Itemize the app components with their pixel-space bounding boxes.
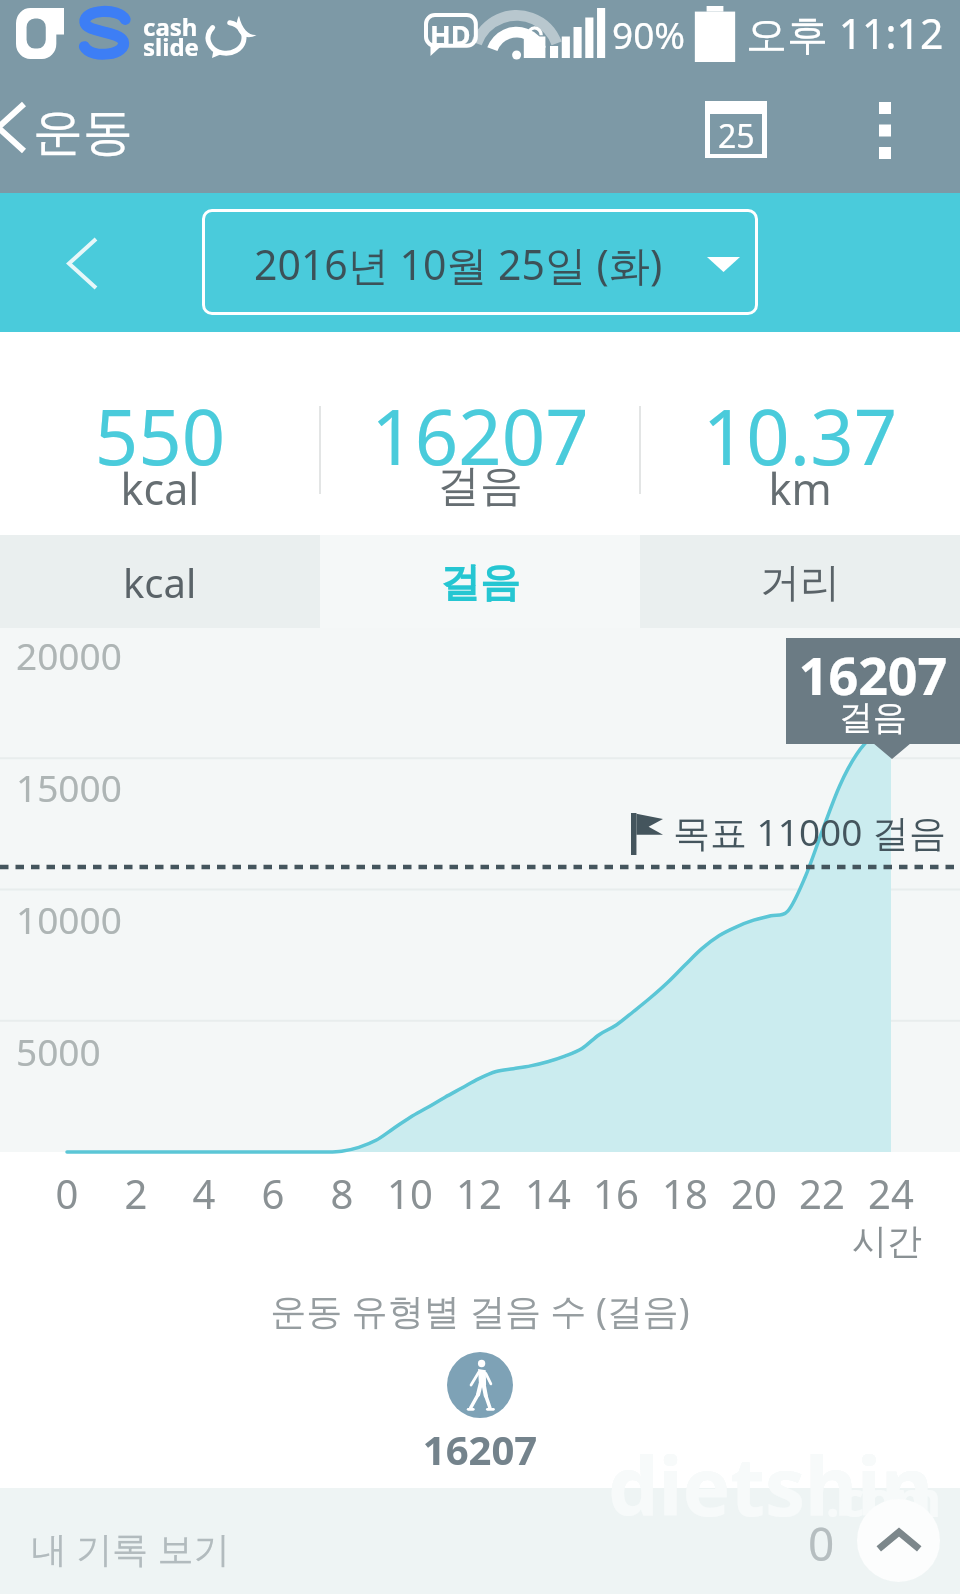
staticText: 22 [782,1166,862,1220]
staticText: 6 [233,1166,313,1220]
staticText: 90% [612,9,686,59]
button[interactable]: kcal [0,535,320,628]
staticText: 5000 [16,1026,101,1076]
button[interactable]: 2016년 10월 25일 (화) [202,209,758,315]
staticText: 16 [576,1166,656,1220]
staticText: dietshin [608,1430,934,1539]
staticText: 0 [808,1512,835,1575]
staticText: 0 [27,1166,107,1220]
staticText: 2016년 10월 25일 (화) [254,236,663,292]
button[interactable]: 550 [0,332,320,535]
button[interactable]: 내 기록 보기 [0,1488,960,1594]
staticText: 25 [718,114,755,154]
staticText: 걸음 [786,696,960,739]
button[interactable]: Previous day [45,214,121,310]
staticText: km [640,459,960,518]
staticText: 2 [96,1166,176,1220]
staticText: dietshin [608,1430,934,1536]
staticText: 15000 [16,762,122,812]
staticText: .com [826,1466,942,1531]
staticText: 16207 [320,384,640,488]
staticText: cash [143,10,198,43]
staticText: HD [430,16,471,53]
staticText: kcal [123,555,197,609]
staticText: 16207 [786,639,960,710]
staticText: 시간 [852,1219,922,1263]
staticText: 16207 [0,1422,960,1476]
staticText: 18 [645,1166,725,1220]
staticText: 14 [508,1166,588,1220]
staticText: 20000 [16,630,122,680]
staticText: slide [143,30,199,63]
staticText: 목표 11000 걸음 [673,806,947,857]
staticText: 8 [302,1166,382,1220]
staticText: 거리 [760,557,840,607]
button[interactable]: 10.37 [640,332,960,535]
staticText: 4 [164,1166,244,1220]
staticText: 걸음 [320,459,640,513]
button[interactable]: 거리 [640,535,960,628]
button[interactable]: Calendar [697,93,775,167]
button[interactable]: More options [855,94,915,166]
staticText: 오후 11:12 [746,5,944,61]
staticText: 운동 유형별 걸음 수 (걸음) [0,1286,960,1335]
staticText: 10000 [16,894,122,944]
button[interactable]: Scroll to top [857,1499,940,1582]
staticText: 내 기록 보기 [31,1524,230,1573]
staticText: 24 [851,1166,931,1220]
staticText: 12 [439,1166,519,1220]
staticText: 10.37 [640,384,960,488]
button[interactable]: 운동 [0,80,230,193]
staticText: 20 [714,1166,794,1220]
button[interactable]: 16207 [320,332,640,535]
staticText: kcal [0,459,320,518]
staticText: 550 [0,384,320,488]
staticText: 운동 [33,101,133,164]
staticText: 10 [370,1166,450,1220]
button[interactable]: 걸음 [320,535,640,628]
staticText: 걸음 [440,557,520,607]
